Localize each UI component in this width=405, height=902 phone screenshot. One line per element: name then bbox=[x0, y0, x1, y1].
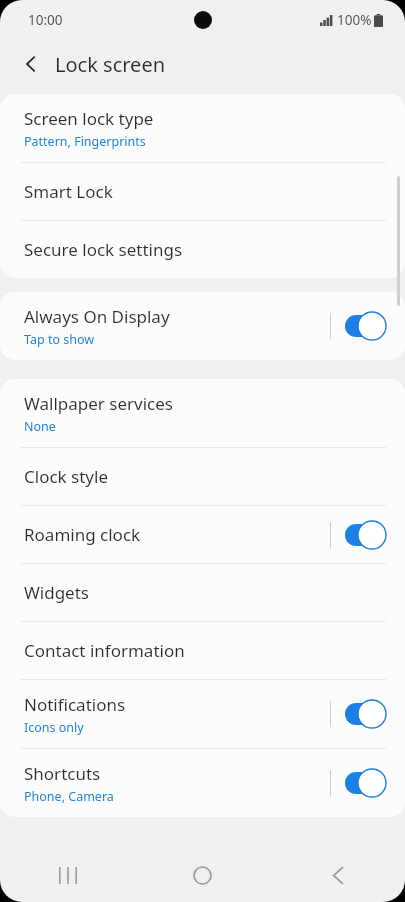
staticText: Roaming clock bbox=[24, 523, 141, 546]
staticText: Widgets bbox=[24, 581, 89, 604]
button[interactable]: Clock style bbox=[0, 448, 405, 505]
staticText: Screen lock type bbox=[24, 107, 154, 130]
button[interactable]: Screen lock type bbox=[0, 94, 405, 162]
staticText: Contact information bbox=[24, 639, 185, 662]
button[interactable]: Notifications bbox=[0, 680, 405, 748]
button[interactable]: Secure lock settings bbox=[0, 221, 405, 278]
staticText: Smart Lock bbox=[24, 180, 113, 203]
button[interactable]: Wallpaper services bbox=[0, 379, 405, 447]
button[interactable]: Recent apps bbox=[0, 848, 135, 902]
staticText: Secure lock settings bbox=[24, 238, 183, 261]
staticText: Icons only bbox=[24, 719, 84, 736]
button[interactable]: Back bbox=[12, 45, 50, 83]
staticText: Shortcuts bbox=[24, 762, 101, 785]
button[interactable]: Smart Lock bbox=[0, 163, 405, 220]
button[interactable]: Contact information bbox=[0, 622, 405, 679]
button[interactable]: Widgets bbox=[0, 564, 405, 621]
button[interactable]: Always On Display bbox=[0, 292, 405, 360]
button[interactable]: Toggle bbox=[345, 768, 387, 798]
button[interactable]: Home bbox=[135, 848, 270, 902]
staticText: Tap to show bbox=[24, 331, 95, 348]
staticText: Clock style bbox=[24, 465, 108, 488]
staticText: 100% bbox=[337, 11, 372, 29]
button[interactable]: Toggle bbox=[345, 311, 387, 341]
button[interactable]: Shortcuts bbox=[0, 749, 405, 817]
button[interactable]: Toggle bbox=[345, 520, 387, 550]
staticText: Pattern, Fingerprints bbox=[24, 133, 146, 150]
staticText: Lock screen bbox=[55, 51, 166, 78]
staticText: None bbox=[24, 418, 56, 435]
button[interactable]: Roaming clock bbox=[0, 506, 405, 563]
staticText: 10:00 bbox=[28, 11, 63, 29]
staticText: Phone, Camera bbox=[24, 788, 114, 805]
staticText: Always On Display bbox=[24, 305, 170, 328]
staticText: Wallpaper services bbox=[24, 392, 173, 415]
button[interactable]: Toggle bbox=[345, 699, 387, 729]
button[interactable]: Back bbox=[270, 848, 405, 902]
staticText: Notifications bbox=[24, 693, 126, 716]
